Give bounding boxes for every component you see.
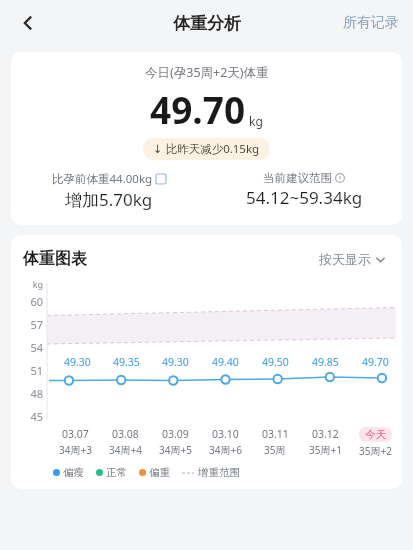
staticText: 体重分析 [173, 13, 241, 34]
staticText: 今天 [365, 428, 386, 441]
staticText: 03.08 [112, 427, 139, 441]
staticText: 增重范围 [198, 466, 240, 479]
staticText: ↓ 比昨天减少0.15kg [153, 141, 260, 157]
button[interactable]: Back [8, 3, 48, 43]
staticText: 偏重 [149, 466, 170, 479]
staticText: 49.30 [64, 355, 91, 369]
staticText: 34周+6 [209, 443, 242, 457]
staticText: 比孕前体重44.00kg [52, 171, 153, 187]
button[interactable]: 按天显示 [315, 247, 390, 271]
staticText: 03.07 [62, 427, 89, 441]
staticText: 增加5.70kg [65, 188, 153, 211]
staticText: kg [17, 278, 43, 290]
staticText: 49.35 [113, 355, 140, 369]
button[interactable]: 比孕前体重44.00kg [11, 171, 206, 211]
staticText: 49.30 [162, 355, 189, 369]
staticText: 35周+2 [359, 444, 392, 458]
staticText: 48 [17, 386, 43, 409]
staticText: 57 [17, 317, 43, 340]
button[interactable]: 当前建议范围 [206, 171, 402, 209]
button[interactable]: 所有记录 [329, 6, 413, 40]
staticText: 60 [17, 294, 43, 317]
staticText: 所有记录 [343, 14, 399, 32]
staticText: 03.12 [312, 427, 339, 441]
staticText: 51 [17, 363, 43, 386]
staticText: 03.10 [212, 427, 239, 441]
staticText: 偏瘦 [63, 466, 84, 479]
staticText: 34周+5 [159, 443, 192, 457]
staticText: 49.70 [362, 355, 389, 369]
staticText: 35周+1 [309, 443, 342, 457]
staticText: 34周+3 [59, 443, 92, 457]
staticText: 49.85 [312, 355, 339, 369]
staticText: 今日(孕35周+2天)体重 [145, 64, 269, 81]
staticText: 35周 [264, 443, 286, 457]
staticText: 49.50 [262, 355, 289, 369]
staticText: 34周+4 [109, 443, 142, 457]
staticText: 按天显示 [319, 251, 371, 267]
staticText: 54 [17, 340, 43, 363]
staticText: 03.09 [162, 427, 189, 441]
staticText: 当前建议范围 [263, 171, 332, 185]
staticText: kg [249, 113, 263, 129]
staticText: 45 [17, 409, 43, 427]
staticText: 49.40 [212, 355, 239, 369]
staticText: 49.70 [150, 84, 246, 134]
staticText: 03.11 [262, 427, 289, 441]
staticText: 54.12~59.34kg [246, 186, 363, 209]
staticText: 正常 [106, 466, 127, 479]
staticText: 体重图表 [23, 249, 87, 269]
